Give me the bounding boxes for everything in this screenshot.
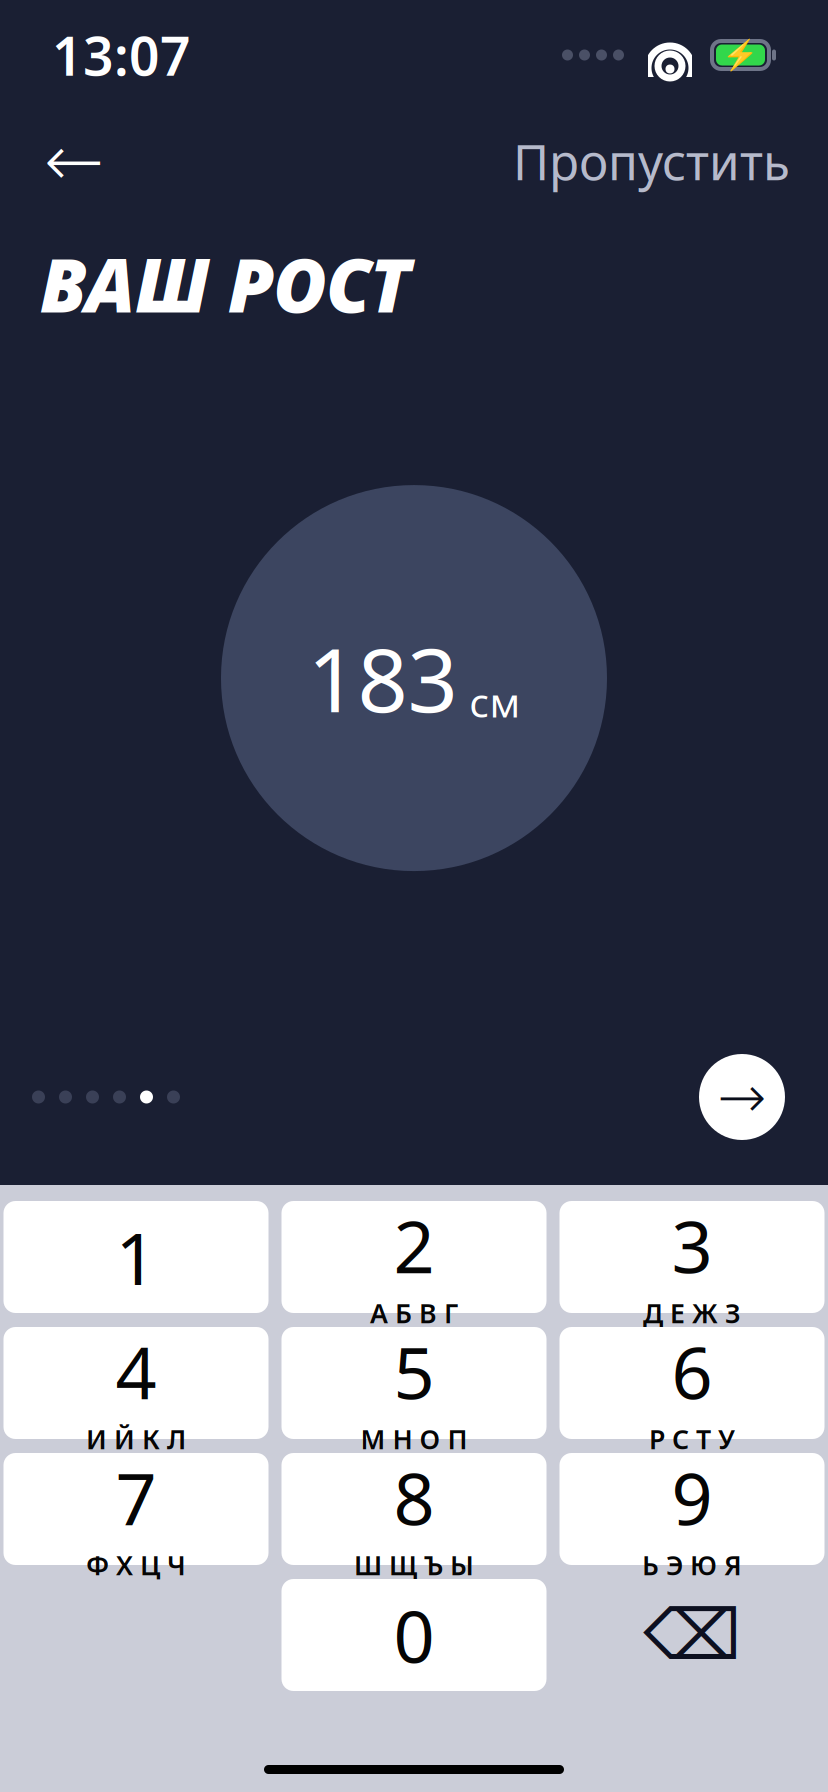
- staticText: ⚡: [722, 38, 759, 72]
- staticText: 5: [393, 1323, 434, 1419]
- button[interactable]: 9: [559, 1453, 824, 1565]
- staticText: Р С Т У: [649, 1421, 735, 1456]
- staticText: Ф Х Ц Ч: [86, 1547, 186, 1582]
- button[interactable]: 7: [3, 1453, 268, 1565]
- staticText: см: [469, 675, 520, 728]
- staticText: 7: [115, 1449, 156, 1545]
- staticText: Ь Э Ю Я: [642, 1547, 742, 1582]
- staticText: 6: [671, 1323, 712, 1419]
- staticText: 3: [671, 1197, 712, 1293]
- staticText: И Й К Л: [86, 1421, 186, 1456]
- staticText: 13:07: [52, 20, 191, 90]
- staticText: 9: [671, 1449, 712, 1545]
- staticText: ВАШ РОСТ: [40, 234, 409, 333]
- staticText: ⌫: [643, 1596, 741, 1674]
- button[interactable]: 1: [3, 1201, 268, 1313]
- staticText: 2: [393, 1197, 434, 1293]
- button[interactable]: 0: [281, 1579, 546, 1691]
- button[interactable]: Далее: [696, 1051, 788, 1143]
- button[interactable]: 2: [281, 1201, 546, 1313]
- staticText: М Н О П: [360, 1421, 467, 1456]
- staticText: →: [717, 1064, 766, 1130]
- button[interactable]: 8: [281, 1453, 546, 1565]
- button[interactable]: Пропустить: [505, 122, 798, 200]
- staticText: 1: [115, 1209, 156, 1305]
- staticText: 183: [307, 620, 457, 736]
- staticText: Пропустить: [513, 128, 790, 194]
- button[interactable]: Назад: [30, 122, 118, 200]
- button[interactable]: 3: [559, 1201, 824, 1313]
- button[interactable]: 6: [559, 1327, 824, 1439]
- staticText: Ш Щ Ъ Ы: [354, 1547, 474, 1582]
- staticText: А Б В Г: [370, 1295, 458, 1330]
- staticText: 4: [115, 1323, 156, 1419]
- staticText: 8: [393, 1449, 434, 1545]
- staticText: Д Е Ж З: [643, 1295, 741, 1330]
- staticText: ←: [44, 120, 104, 202]
- button[interactable]: 4: [3, 1327, 268, 1439]
- staticText: 0: [393, 1587, 434, 1683]
- button[interactable]: Удалить: [559, 1579, 824, 1691]
- button[interactable]: 5: [281, 1327, 546, 1439]
